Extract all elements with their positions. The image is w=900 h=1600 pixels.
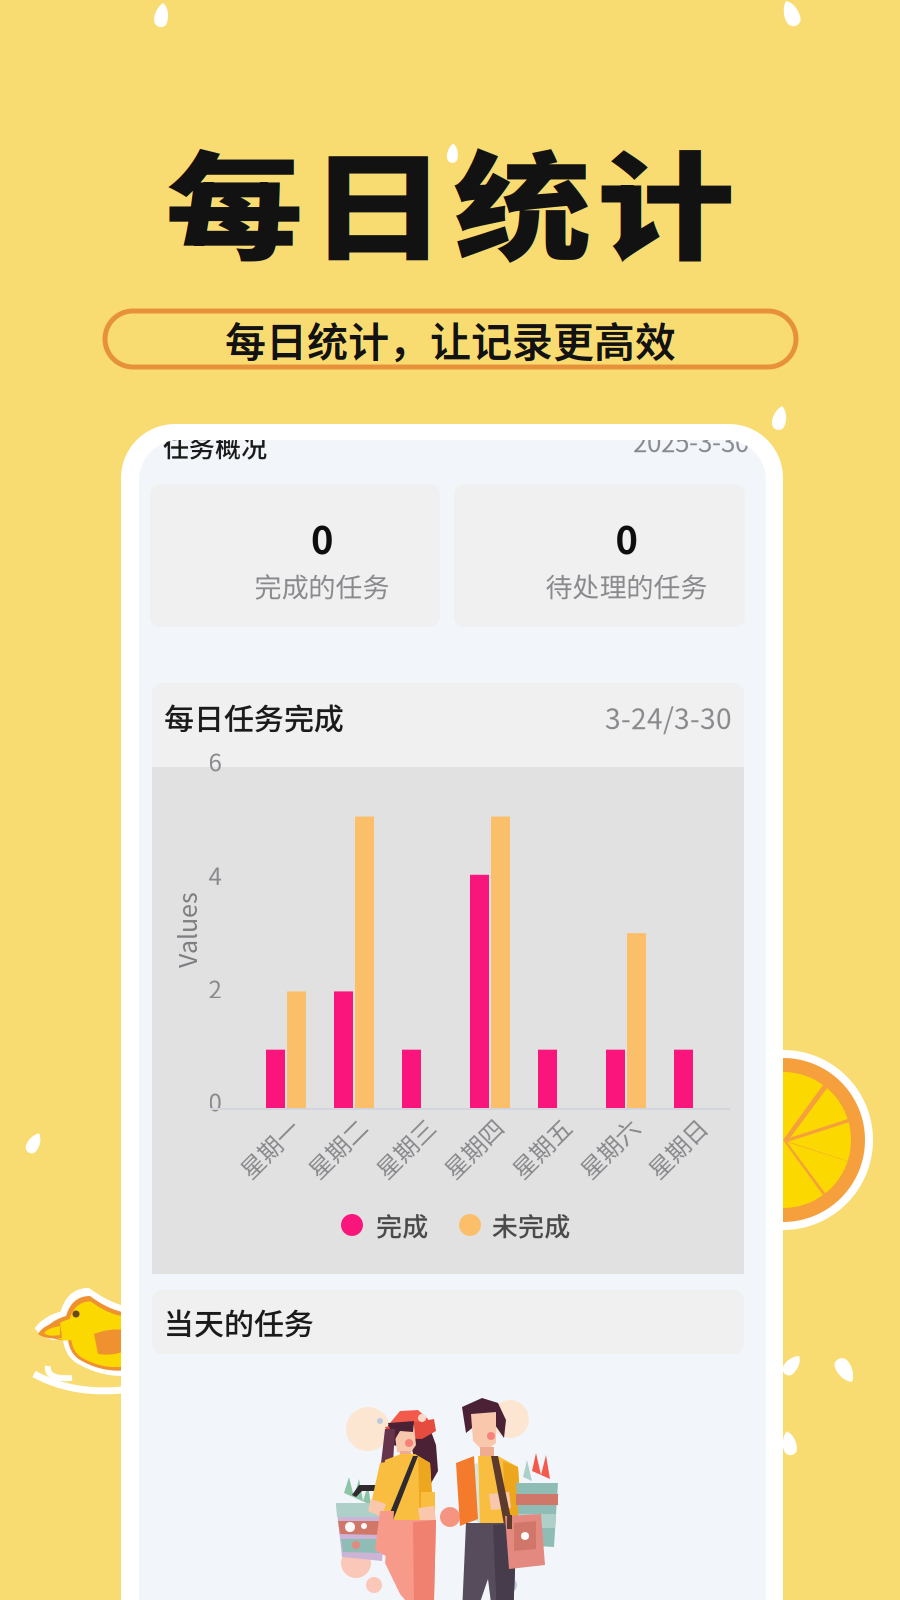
staticText: 未完成 [492, 1206, 570, 1244]
staticText: 完成的任务 [254, 566, 389, 605]
staticText: 当天的任务 [164, 1300, 314, 1344]
staticText: 星期三 [369, 1131, 441, 1165]
staticText: 星期一 [233, 1131, 305, 1165]
staticText: 星期四 [437, 1131, 509, 1165]
staticText: 0 [208, 1084, 221, 1118]
staticText: 3-24/3-30 [605, 697, 732, 737]
staticText: 任务概况 [163, 427, 267, 465]
staticText: 0 [311, 510, 333, 565]
staticText: 0 [615, 510, 637, 565]
staticText: 每日统计 [206, 114, 693, 284]
staticText: 星期日 [641, 1131, 713, 1165]
staticText: 2 [208, 971, 221, 1005]
staticText: 完成 [376, 1206, 428, 1244]
staticText: 星期六 [573, 1131, 645, 1165]
staticText: 2025-3-30 [633, 422, 749, 460]
staticText: 星期五 [505, 1131, 577, 1165]
staticText: 每日统计，让记录更高效 [225, 309, 676, 369]
staticText: Values [148, 912, 224, 948]
staticText: 6 [208, 744, 221, 778]
staticText: 待处理的任务 [545, 566, 707, 605]
button[interactable]: 0 [454, 484, 745, 627]
button[interactable]: 0 [150, 484, 440, 627]
staticText: 星期二 [301, 1131, 373, 1165]
staticText: 4 [208, 858, 221, 892]
staticText: 每日任务完成 [164, 695, 344, 739]
button[interactable]: 当天的任务 [152, 1290, 744, 1354]
